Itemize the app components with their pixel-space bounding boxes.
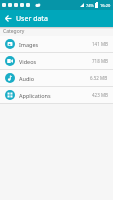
staticText: Applications [19,92,51,99]
staticText: 6.52 MB [90,75,108,81]
staticText: Images [19,41,39,48]
staticText: Audio [19,75,35,82]
button[interactable]: User data [0,10,113,27]
staticText: Category [3,28,25,35]
button[interactable]: Applications [0,87,113,103]
button[interactable]: Audio [0,70,113,86]
staticText: 141 MB [92,41,108,47]
staticText: 423 MB [92,92,108,98]
staticText: User data [16,14,48,24]
staticText: 74% [86,3,94,8]
button[interactable]: Images [0,36,113,52]
staticText: 718 MB [92,58,108,64]
staticText: 16:20 [100,3,111,8]
staticText: Videos [19,58,37,65]
button[interactable]: Videos [0,53,113,69]
